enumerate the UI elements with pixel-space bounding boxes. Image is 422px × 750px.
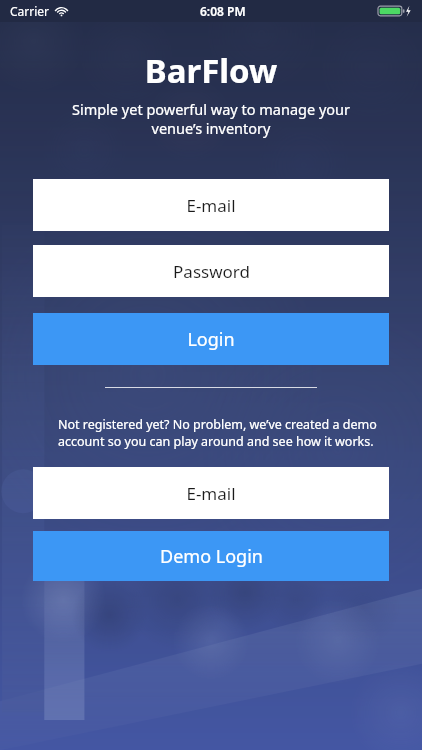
- staticText: Demo Login: [160, 544, 263, 569]
- staticText: BarFlow: [0, 48, 422, 93]
- staticText: Login: [187, 327, 235, 352]
- button[interactable]: E-mail: [33, 179, 389, 231]
- staticText: E-mail: [186, 194, 236, 217]
- staticText: Password: [173, 260, 250, 283]
- staticText: 6:08 PM: [200, 3, 246, 19]
- staticText: Simple yet powerful way to manage your v…: [34, 99, 388, 138]
- button[interactable]: E-mail: [33, 467, 389, 519]
- button[interactable]: Password: [33, 245, 389, 297]
- staticText: Carrier: [10, 3, 50, 19]
- button[interactable]: Demo Login: [33, 531, 389, 581]
- staticText: Not registered yet? No problem, we’ve cr…: [58, 416, 377, 449]
- button[interactable]: Login: [33, 313, 389, 365]
- staticText: E-mail: [186, 482, 236, 505]
